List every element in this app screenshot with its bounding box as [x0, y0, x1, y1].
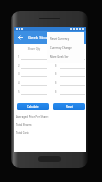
staticText: $: [55, 90, 57, 94]
button[interactable]: Currency Change: [47, 43, 84, 52]
button[interactable]: Reset: [53, 103, 85, 110]
button[interactable]: Navigate up: [14, 31, 26, 44]
staticText: Averaged Price Per Share:: [16, 115, 49, 119]
button[interactable]: Price per share 1: [60, 59, 85, 60]
button[interactable]: Reset Currency: [47, 34, 84, 43]
button[interactable]: More Geek Ser: [47, 52, 84, 61]
staticText: Total Cost:: [16, 131, 30, 135]
staticText: 3: [18, 72, 20, 76]
staticText: Reset Currency: [50, 37, 70, 41]
button[interactable]: Calculate: [17, 103, 49, 110]
staticText: $: [55, 55, 57, 59]
staticText: Geek Stock Average: [28, 35, 68, 41]
staticText: Price/Share: [61, 47, 86, 51]
staticText: Reset: [66, 105, 73, 109]
staticText: Total Shares:: [16, 123, 33, 127]
staticText: $: [55, 72, 57, 76]
staticText: Calculate: [27, 105, 39, 109]
staticText: 2: [18, 64, 20, 68]
staticText: $: [55, 64, 57, 68]
staticText: More Geek Ser: [50, 55, 69, 59]
staticText: 1: [18, 55, 20, 59]
staticText: Currency Change: [50, 46, 72, 50]
staticText: $: [55, 81, 57, 85]
staticText: Share Qty: [21, 47, 47, 51]
staticText: 4: [18, 81, 20, 85]
staticText: 5: [18, 90, 20, 94]
